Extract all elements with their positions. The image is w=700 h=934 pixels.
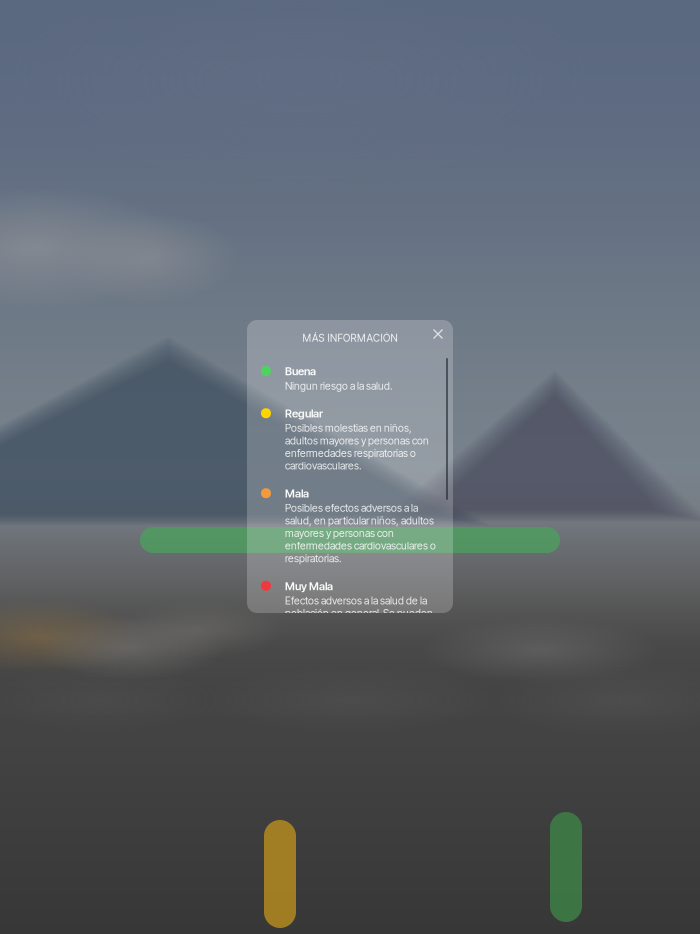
- staticText: Posibles efectos adversos a la salud, en…: [285, 502, 436, 565]
- staticText: Muy Mala: [285, 579, 333, 593]
- staticText: Buena: [285, 364, 316, 378]
- staticText: Posibles molestias en niños, adultos may…: [285, 422, 429, 472]
- staticText: Ningun riesgo a la salud.: [285, 380, 392, 392]
- staticText: Regular: [285, 407, 323, 420]
- staticText: Efectos adversos a la salud de la poblac…: [285, 594, 433, 632]
- staticText: MÁS INFORMACIÓN: [302, 332, 397, 344]
- staticText: Mala: [285, 487, 309, 500]
- button[interactable]: Cerrar: [427, 323, 449, 345]
